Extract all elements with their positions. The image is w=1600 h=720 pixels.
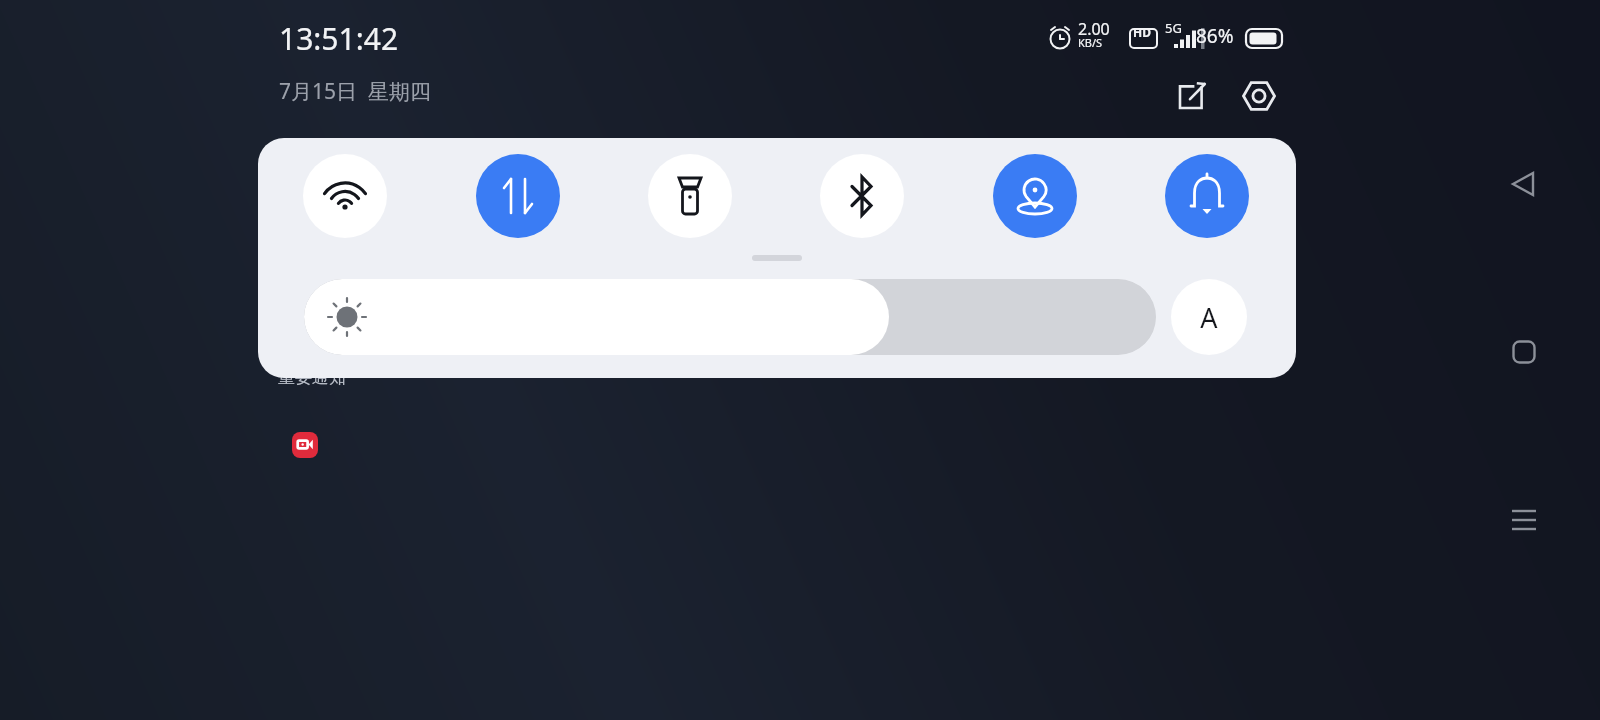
button[interactable]: Settings — [1238, 75, 1280, 117]
staticText: A — [1200, 299, 1218, 336]
button[interactable]: Flashlight — [648, 154, 732, 238]
staticText: 5G — [1165, 19, 1182, 37]
button[interactable]: Bluetooth — [820, 154, 904, 238]
button[interactable]: Mobile data — [476, 154, 560, 238]
button[interactable]: Screen recorder — [292, 432, 318, 458]
button[interactable]: A — [1171, 279, 1247, 355]
button[interactable]: Back — [1500, 160, 1548, 208]
staticText: KB/S — [1078, 35, 1103, 50]
staticText: 86% — [1196, 23, 1234, 49]
button[interactable]: Brightness — [304, 279, 1156, 355]
staticText: 7月15日 星期四 — [279, 77, 431, 106]
staticText: HD — [1133, 24, 1151, 40]
staticText: 重要通知 — [278, 367, 346, 387]
staticText: 2.00 — [1078, 18, 1110, 40]
button[interactable]: Ringer — [1165, 154, 1249, 238]
button[interactable]: Edit quick settings — [1172, 76, 1212, 116]
button[interactable]: Location — [993, 154, 1077, 238]
button[interactable]: Wi-Fi — [303, 154, 387, 238]
button[interactable]: Recent apps — [1500, 496, 1548, 544]
button[interactable]: Home — [1500, 328, 1548, 376]
staticText: 13:51:42 — [279, 18, 399, 59]
